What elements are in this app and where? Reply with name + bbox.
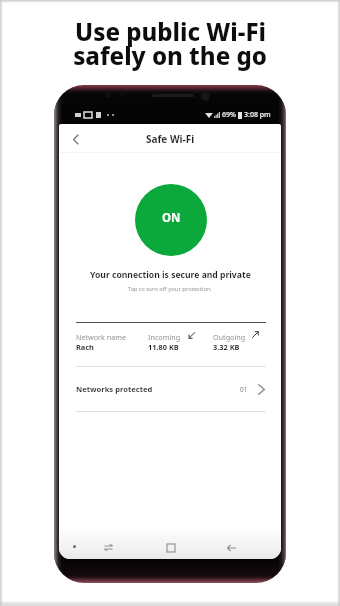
staticText: 69% [222, 110, 236, 120]
staticText: 01 [240, 385, 248, 394]
button[interactable]: Recents [99, 538, 118, 557]
staticText: Networks protected [76, 384, 153, 394]
button[interactable]: Networks protected [59, 367, 281, 411]
staticText: 3.32 KB [213, 342, 240, 352]
staticText: safely on the go [73, 39, 267, 72]
staticText: Rach [76, 342, 94, 352]
button[interactable]: Back [222, 538, 241, 557]
button[interactable]: Home [161, 538, 180, 557]
button[interactable]: Back [66, 130, 84, 148]
staticText: Incoming [148, 332, 181, 342]
staticText: 3:08 pm [244, 110, 271, 120]
staticText: ON [162, 210, 181, 226]
button[interactable]: ON [135, 184, 207, 256]
staticText: Network name [76, 332, 127, 342]
staticText: Your connection is secure and private [90, 269, 251, 281]
staticText: Use public Wi-Fi [75, 15, 266, 48]
staticText: 11.80 KB [148, 342, 179, 352]
staticText: Safe Wi-Fi [146, 132, 195, 146]
staticText: Outgoing [213, 332, 246, 342]
staticText: Tap to turn off your protection. [128, 285, 213, 293]
